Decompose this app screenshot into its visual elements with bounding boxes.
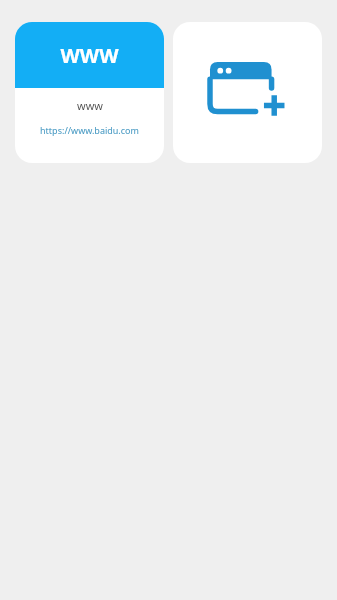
staticText: WWW [60, 42, 119, 69]
staticText: https://www.baidu.com [40, 124, 139, 136]
button[interactable]: WWW [15, 22, 164, 163]
button[interactable]: Add bookmark [173, 22, 322, 163]
staticText: www [77, 98, 103, 113]
